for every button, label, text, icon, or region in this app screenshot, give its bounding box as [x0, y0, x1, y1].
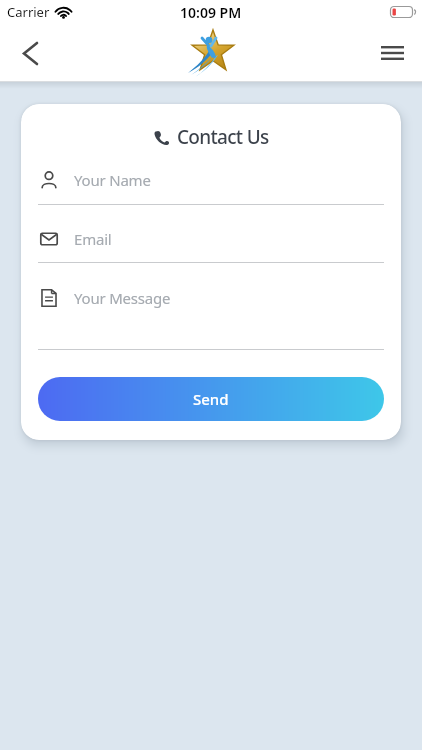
button[interactable]: Your Message — [40, 287, 171, 309]
button[interactable]: Your Name — [40, 169, 151, 191]
staticText: Send — [193, 389, 229, 409]
button[interactable]: Email — [40, 228, 112, 250]
staticText: Email — [74, 229, 112, 249]
button[interactable]: Send — [38, 377, 384, 421]
staticText: Your Message — [74, 288, 171, 308]
staticText: Contact Us — [177, 124, 269, 150]
staticText: 10:09 PM — [180, 3, 242, 22]
button[interactable] — [14, 37, 46, 69]
button[interactable] — [376, 37, 408, 69]
staticText: Your Name — [74, 170, 151, 190]
staticText: Carrier — [7, 3, 50, 21]
